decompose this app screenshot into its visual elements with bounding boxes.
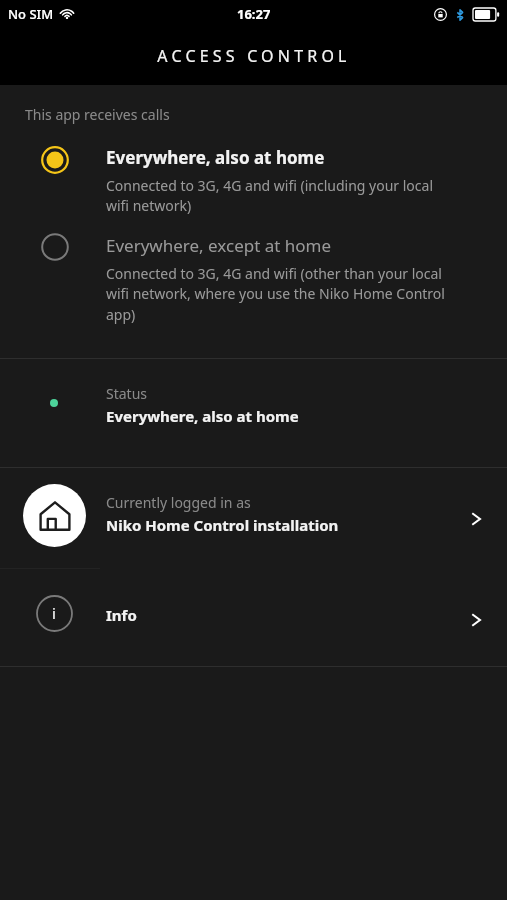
staticText: Everywhere, also at home xyxy=(106,146,325,169)
staticText: i xyxy=(52,603,56,623)
staticText: 16:27 xyxy=(237,5,271,23)
staticText: Connected to 3G, 4G and wifi (including … xyxy=(106,176,481,216)
button[interactable]: Everywhere, except at home xyxy=(0,225,507,333)
staticText: Everywhere, also at home xyxy=(106,406,299,426)
staticText: This app receives calls xyxy=(25,105,170,124)
staticText: Info xyxy=(106,605,137,625)
button[interactable]: Everywhere, also at home xyxy=(0,132,507,217)
other: Open xyxy=(465,609,487,631)
staticText: Connected to 3G, 4G and wifi (other than… xyxy=(106,264,486,325)
staticText: Status xyxy=(106,384,148,403)
button[interactable]: Status xyxy=(0,359,507,467)
button[interactable]: Home xyxy=(0,468,507,568)
button[interactable]: i xyxy=(0,575,507,665)
other: Open xyxy=(465,508,487,530)
other: Home xyxy=(37,498,73,534)
staticText: No SIM xyxy=(8,5,54,23)
staticText: Everywhere, except at home xyxy=(106,234,332,257)
staticText: Currently logged in as xyxy=(106,493,251,512)
staticText: Niko Home Control installation xyxy=(106,515,339,535)
staticText: ACCESS CONTROL xyxy=(157,45,351,67)
